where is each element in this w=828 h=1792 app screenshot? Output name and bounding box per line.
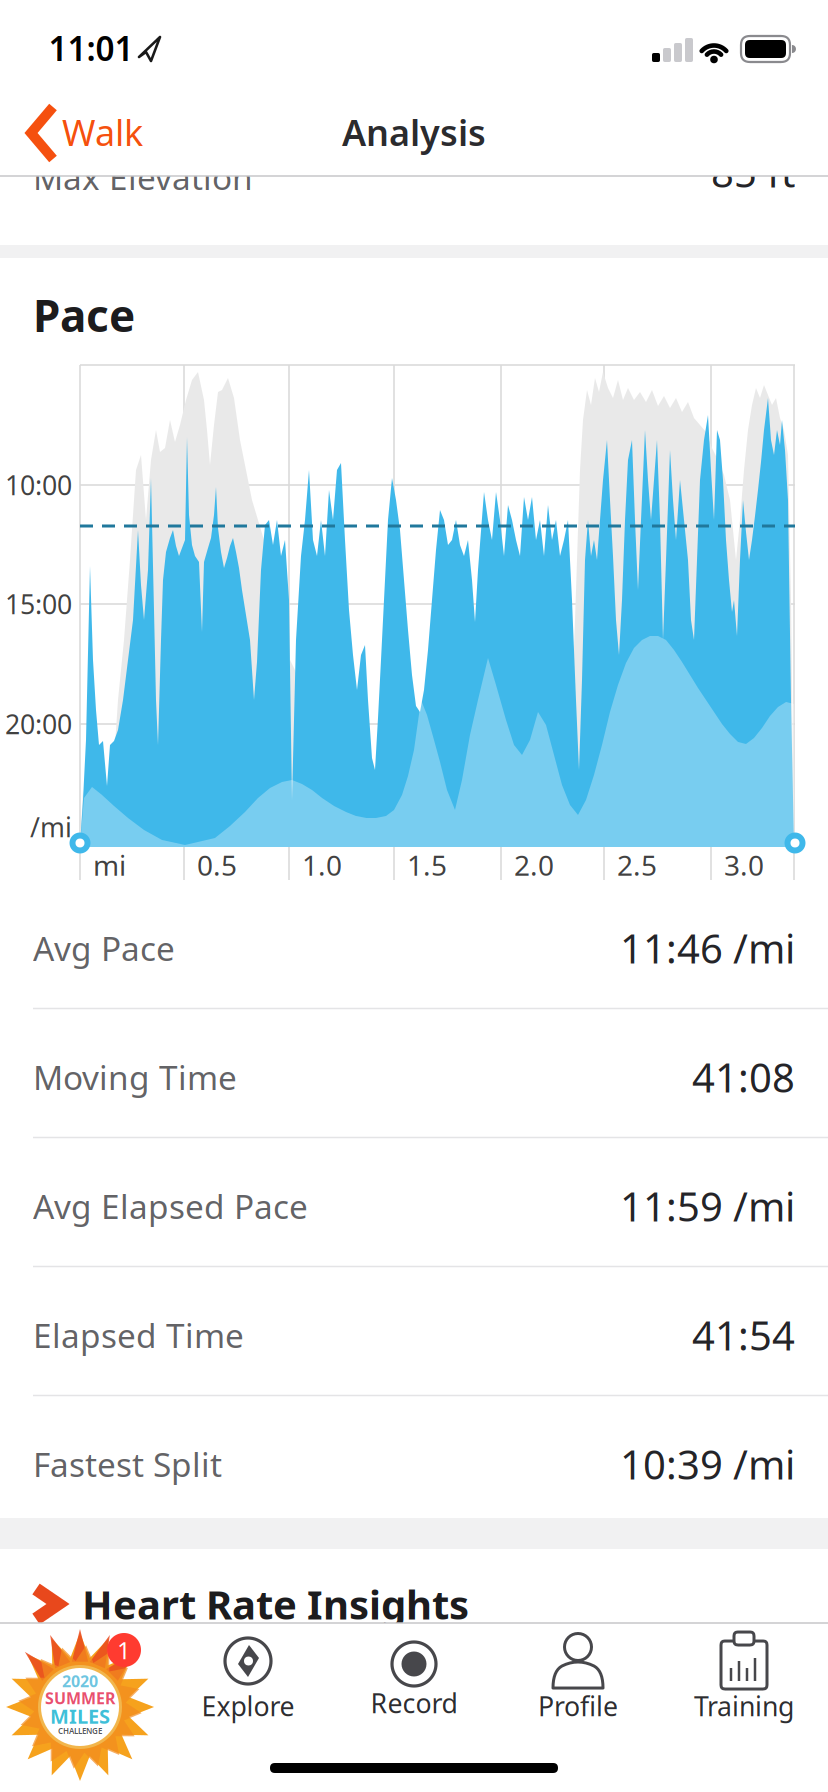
staticText: MILES: [50, 1703, 110, 1729]
staticText: Elapsed Time: [33, 1313, 244, 1357]
staticText: 85 ft: [711, 145, 795, 198]
staticText: 10:00: [5, 467, 72, 503]
staticText: 1: [117, 1634, 131, 1666]
staticText: Walk: [62, 108, 143, 156]
button[interactable]: 2020 Summer Miles Challenge: [0, 0, 828, 1792]
staticText: 11:46 /mi: [620, 921, 795, 974]
staticText: Heart Rate Insights: [82, 1577, 469, 1630]
staticText: 1.5: [407, 846, 447, 884]
staticText: 2020: [62, 1670, 98, 1692]
staticText: Explore: [201, 1688, 294, 1724]
staticText: Analysis: [342, 108, 486, 156]
button[interactable]: Record: [0, 0, 828, 1792]
staticText: Record: [370, 1685, 457, 1721]
staticText: CHALLENGE: [58, 1726, 102, 1736]
button[interactable]: Explore: [0, 0, 828, 1792]
staticText: 41:54: [692, 1308, 795, 1361]
staticText: Training: [694, 1688, 794, 1724]
staticText: Moving Time: [33, 1055, 237, 1099]
button[interactable]: Training: [0, 0, 828, 1792]
staticText: 11:01: [48, 26, 133, 70]
staticText: 15:00: [5, 586, 72, 622]
staticText: 41:08: [692, 1050, 795, 1103]
staticText: 3.0: [724, 846, 764, 884]
staticText: 10:39 /mi: [620, 1437, 795, 1490]
staticText: 20:00: [5, 706, 72, 742]
staticText: Max Elevation: [33, 155, 253, 199]
staticText: Pace: [33, 286, 135, 344]
staticText: Avg Elapsed Pace: [33, 1184, 308, 1228]
staticText: Profile: [538, 1688, 618, 1724]
staticText: mi: [93, 846, 126, 884]
staticText: /mi: [30, 809, 72, 845]
button[interactable]: Profile: [0, 0, 828, 1792]
staticText: 1.0: [302, 846, 342, 884]
staticText: SUMMER: [45, 1687, 115, 1709]
staticText: Avg Pace: [33, 926, 175, 970]
staticText: 11:59 /mi: [620, 1179, 795, 1232]
button[interactable]: Walk: [0, 0, 828, 1792]
staticText: Fastest Split: [33, 1442, 222, 1486]
staticText: 0.5: [197, 846, 237, 884]
staticText: 2.0: [514, 846, 554, 884]
staticText: 2.5: [617, 846, 657, 884]
